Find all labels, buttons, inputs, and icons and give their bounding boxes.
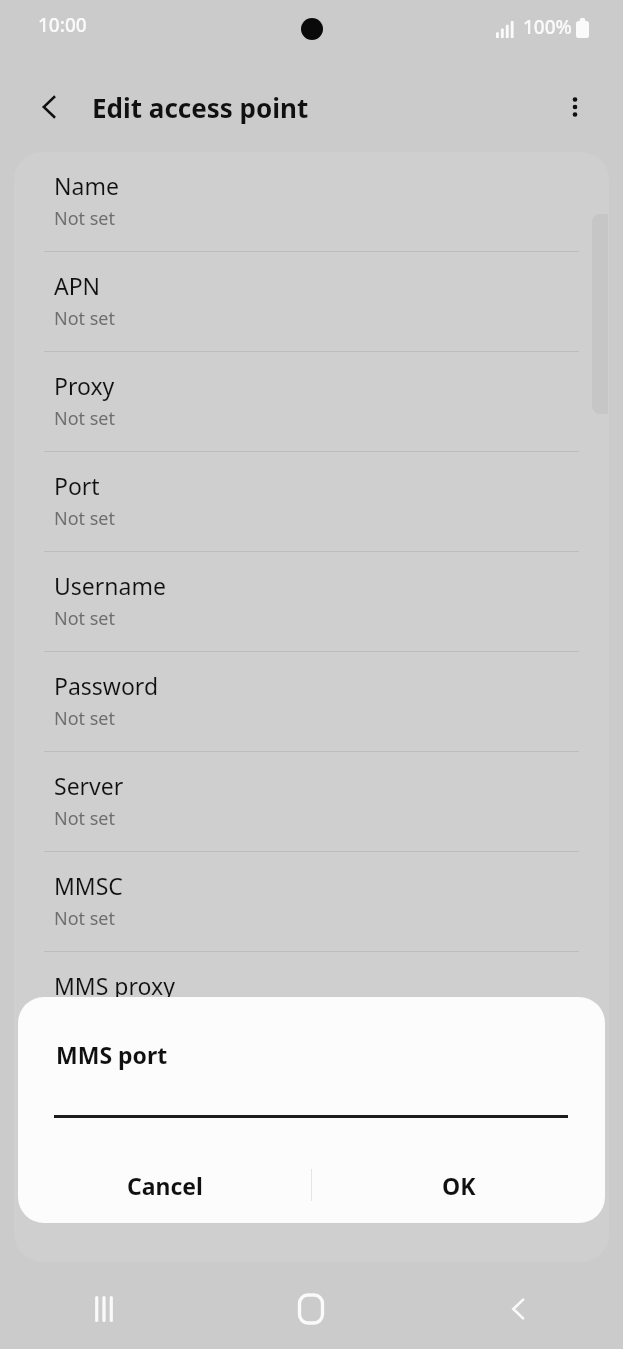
button[interactable]: Server [14,752,609,852]
staticText: Not set [54,306,116,331]
staticText: 100% [523,14,572,40]
staticText: Name [54,170,119,201]
button[interactable]: Password [14,652,609,752]
staticText: Not set [54,606,116,631]
staticText: Proxy [54,370,115,401]
staticText: Password [54,670,159,701]
button[interactable]: APN [14,252,609,352]
button[interactable]: Name [14,152,609,252]
button[interactable]: Back [22,79,78,135]
staticText: Port [54,470,100,501]
button[interactable]: More options [547,79,603,135]
button[interactable]: Username [14,552,609,652]
staticText: MMSC [54,870,123,901]
staticText: Username [54,570,166,601]
button[interactable]: Recent apps [0,1269,207,1349]
staticText: Not set [54,706,116,731]
button[interactable]: MMSC [14,852,609,952]
staticText: 10:00 [38,12,87,38]
staticText: APN [54,270,101,301]
staticText: Server [54,770,124,801]
staticText: Not set [54,506,116,531]
button[interactable]: OK [312,1147,605,1223]
button[interactable]: Port [14,452,609,552]
staticText: OK [442,1170,476,1201]
button[interactable]: Cancel [18,1147,311,1223]
button[interactable]: MMS proxy [14,952,609,1052]
staticText: MMS proxy [54,970,175,1001]
button[interactable]: Home [207,1269,415,1349]
button[interactable]: Proxy [14,352,609,452]
staticText: Not set [54,906,116,931]
staticText: Not set [54,206,116,231]
staticText: Edit access point [92,90,309,125]
staticText: Not set [54,806,116,831]
staticText: Cancel [127,1170,203,1201]
staticText: MMS port [56,1039,168,1070]
staticText: Not set [54,406,116,431]
